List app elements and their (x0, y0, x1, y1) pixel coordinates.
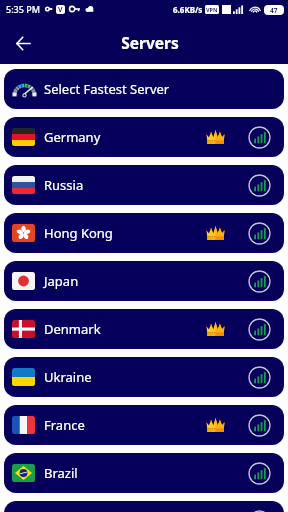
staticText: France (44, 416, 85, 434)
button[interactable]: Canada (4, 501, 284, 512)
staticText: 47 (270, 6, 278, 15)
button[interactable]: Back (9, 29, 37, 57)
button[interactable]: Signal strength (248, 510, 271, 512)
button[interactable]: Signal strength (248, 366, 271, 389)
button[interactable]: Ukraine (4, 357, 284, 397)
button[interactable]: France (4, 405, 284, 445)
staticText: Denmark (44, 320, 101, 338)
button[interactable]: Russia (4, 165, 284, 205)
button[interactable]: Signal strength (248, 222, 271, 245)
staticText: Hong Kong (44, 224, 113, 242)
staticText: Ukraine (44, 368, 92, 386)
staticText: Japan (44, 272, 79, 290)
staticText: VPN (206, 6, 218, 13)
button[interactable]: Signal strength (248, 174, 271, 197)
button[interactable]: Germany (4, 117, 284, 157)
staticText: Select Fastest Server (44, 80, 170, 98)
staticText: 6.6KB/s (173, 4, 203, 15)
staticText: V (58, 5, 63, 14)
staticText: Brazil (44, 464, 78, 482)
staticText: Servers (121, 32, 179, 53)
button[interactable]: Hong Kong (4, 213, 284, 253)
staticText: 5:35 PM (6, 3, 40, 15)
button[interactable]: Signal strength (248, 318, 271, 341)
button[interactable]: Signal strength (248, 270, 271, 293)
button[interactable]: Signal strength (248, 126, 271, 149)
button[interactable]: Select Fastest Server (4, 69, 284, 109)
staticText: Russia (44, 176, 84, 194)
button[interactable]: Brazil (4, 453, 284, 493)
button[interactable]: Denmark (4, 309, 284, 349)
staticText: Germany (44, 128, 101, 146)
button[interactable]: Signal strength (248, 462, 271, 485)
button[interactable]: Signal strength (248, 414, 271, 437)
button[interactable]: Japan (4, 261, 284, 301)
